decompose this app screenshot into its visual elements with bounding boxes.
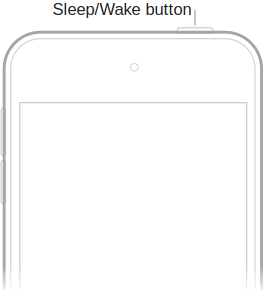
staticText: Sleep/Wake button xyxy=(52,0,191,18)
